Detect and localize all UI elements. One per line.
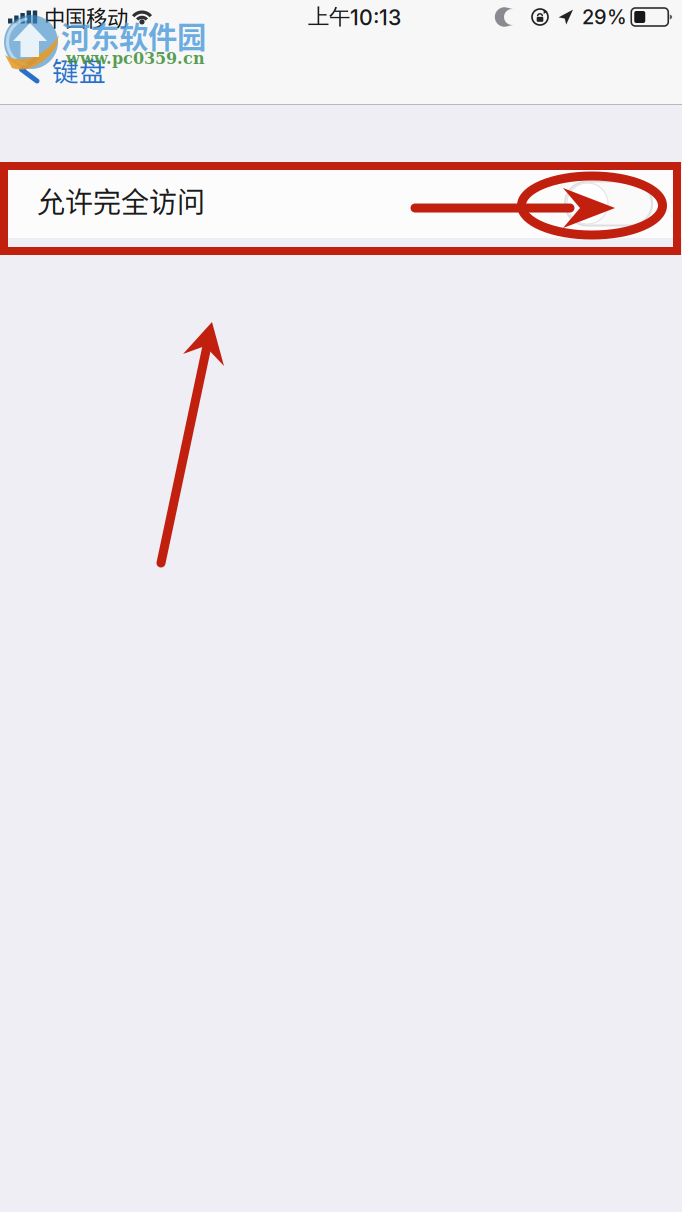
- staticText: 上午10:13: [308, 4, 401, 30]
- staticText: 允许完全访问: [37, 180, 205, 221]
- staticText: 键盘: [52, 50, 106, 89]
- staticText: www.pc0359.cn: [66, 49, 205, 68]
- staticText: 河东软件园: [61, 14, 206, 56]
- button[interactable]: 允许完全访问: [0, 169, 682, 238]
- staticText: 中国移动: [44, 2, 128, 32]
- staticText: 29%: [582, 5, 627, 29]
- button[interactable]: 键盘: [0, 34, 120, 105]
